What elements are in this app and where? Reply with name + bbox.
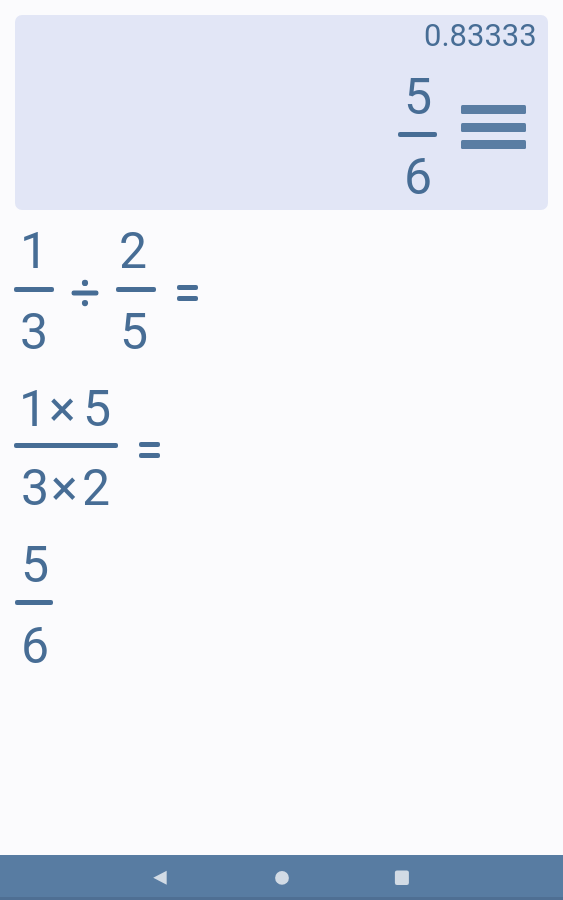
button[interactable] xyxy=(15,15,548,210)
button[interactable] xyxy=(0,537,563,672)
staticText: 5 xyxy=(83,380,112,439)
staticText: 3 xyxy=(20,303,49,362)
staticText: 6 xyxy=(404,148,433,207)
button[interactable] xyxy=(0,225,563,365)
button[interactable] xyxy=(262,858,302,898)
button[interactable] xyxy=(382,858,422,898)
staticText: 3 xyxy=(21,459,50,518)
staticText: 5 xyxy=(404,68,433,127)
staticText: × xyxy=(49,380,76,439)
staticText: 5 xyxy=(120,303,149,362)
staticText: 1 xyxy=(19,380,48,439)
staticText: 2 xyxy=(119,222,148,281)
staticText: 0.83333 xyxy=(424,17,537,53)
staticText: 5 xyxy=(21,536,50,595)
button[interactable] xyxy=(140,858,180,898)
staticText: 1 xyxy=(20,222,49,281)
staticText: × xyxy=(51,459,78,518)
staticText: 2 xyxy=(82,459,111,518)
button[interactable] xyxy=(455,99,531,156)
button[interactable] xyxy=(0,382,563,517)
staticText: 6 xyxy=(21,617,50,676)
